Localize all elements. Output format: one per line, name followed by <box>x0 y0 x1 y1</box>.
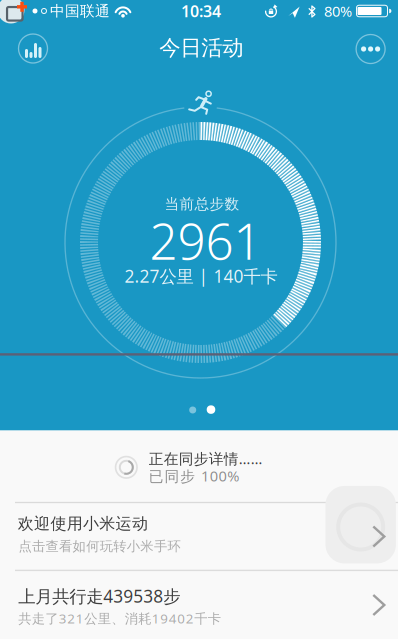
staticText: 中国联通 <box>50 2 110 20</box>
staticText: 当前总步数 <box>164 195 239 213</box>
button[interactable]: 更多 <box>356 34 385 63</box>
button[interactable]: 统计 <box>18 34 47 63</box>
staticText: 点击查看如何玩转小米手环 <box>18 538 180 554</box>
button[interactable]: 上月共行走439538步 <box>0 570 398 639</box>
staticText: 10:34 <box>181 0 221 22</box>
staticText: 上月共行走439538步 <box>18 584 180 607</box>
staticText: 正在同步详情…… <box>149 449 263 468</box>
staticText: 今日活动 <box>159 35 243 61</box>
button[interactable]: 欢迎使用小米运动 <box>0 502 398 570</box>
staticText: 共走了321公里、消耗19402千卡 <box>18 609 221 627</box>
staticText: 2961 <box>149 208 261 273</box>
staticText: 欢迎使用小米运动 <box>18 514 148 534</box>
staticText: 2.27公里 | 140千卡 <box>124 264 277 287</box>
staticText: 80% <box>324 1 352 21</box>
staticText: 已同步 100% <box>149 466 239 486</box>
